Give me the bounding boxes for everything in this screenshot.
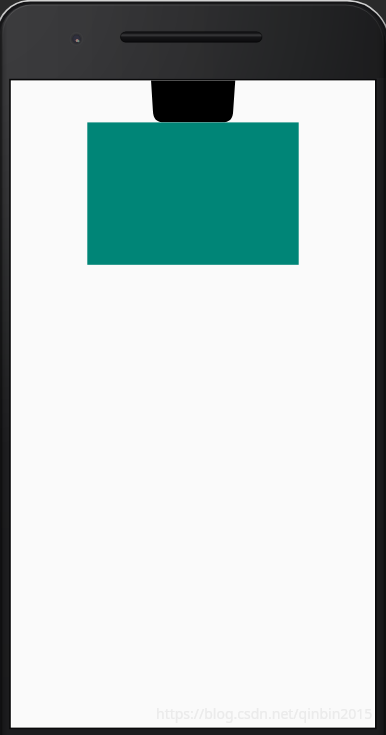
- staticText: https://blog.csdn.net/qinbin2015: [156, 704, 373, 723]
